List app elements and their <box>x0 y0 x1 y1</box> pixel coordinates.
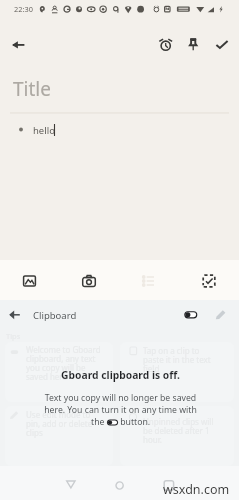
staticText: Tap on a clip to paste it in the text fi… <box>143 345 211 375</box>
staticText: here. You can turn it on any time with <box>1 404 239 416</box>
button[interactable]: Home <box>107 468 133 494</box>
staticText: hello <box>33 124 55 137</box>
staticText: Use edit mode to pin, add or delete clip… <box>26 409 93 439</box>
button[interactable]: Edit clips <box>207 302 233 328</box>
button[interactable]: Recent apps <box>156 468 182 494</box>
staticText: 22:30 <box>14 4 33 14</box>
button[interactable]: Pin <box>181 32 207 58</box>
button[interactable]: Reminder <box>152 32 178 58</box>
staticText: Gboard clipboard is off. <box>1 368 239 382</box>
staticText: Tips <box>6 331 21 341</box>
button[interactable]: Selection mode <box>179 260 239 300</box>
button[interactable]: Turn on clipboard <box>178 302 204 328</box>
button[interactable]: Back <box>1 302 27 328</box>
button[interactable]: Back <box>5 32 31 58</box>
button[interactable]: Take photo <box>59 260 119 300</box>
staticText: Unpinned clips will be deleted after 1 h… <box>143 416 214 446</box>
staticText: button. <box>118 416 151 428</box>
staticText: the <box>91 416 107 428</box>
staticText: Welcome to Gboard clipboard, any text yo… <box>26 344 101 383</box>
staticText: wsxdn.com <box>163 481 230 498</box>
button[interactable]: Back <box>58 468 84 494</box>
button[interactable]: Insert image <box>0 260 59 300</box>
staticText: Clipboard <box>33 309 77 322</box>
button[interactable]: Done <box>209 32 235 58</box>
staticText: Text you copy will no longer be saved <box>1 392 239 404</box>
staticText: Title <box>13 76 51 102</box>
